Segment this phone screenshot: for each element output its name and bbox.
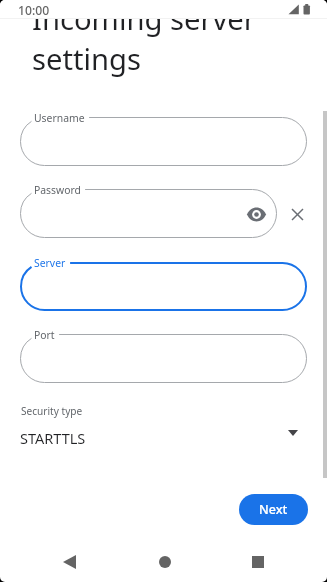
staticText: Security type	[21, 404, 83, 418]
button[interactable]: Security type	[0, 398, 327, 454]
button[interactable]: Password	[20, 189, 277, 238]
button[interactable]: Username	[20, 117, 307, 166]
button[interactable]: Home	[142, 539, 187, 582]
button[interactable]: Server	[20, 262, 307, 311]
button[interactable]: Clear password	[286, 203, 308, 225]
button[interactable]: Back	[47, 539, 92, 582]
staticText: Port	[34, 328, 55, 342]
button[interactable]: Port	[20, 334, 307, 383]
staticText: Next	[259, 501, 288, 518]
button[interactable]: Next	[239, 494, 308, 525]
staticText: Password	[34, 183, 81, 197]
staticText: Username	[34, 111, 85, 125]
button[interactable]: Recents	[235, 539, 280, 582]
staticText: Server	[34, 256, 66, 270]
staticText: STARTTLS	[20, 428, 86, 448]
button[interactable]: Show password	[244, 202, 268, 226]
staticText: Incoming server settings	[32, 0, 282, 78]
staticText: 10:00	[18, 2, 50, 19]
